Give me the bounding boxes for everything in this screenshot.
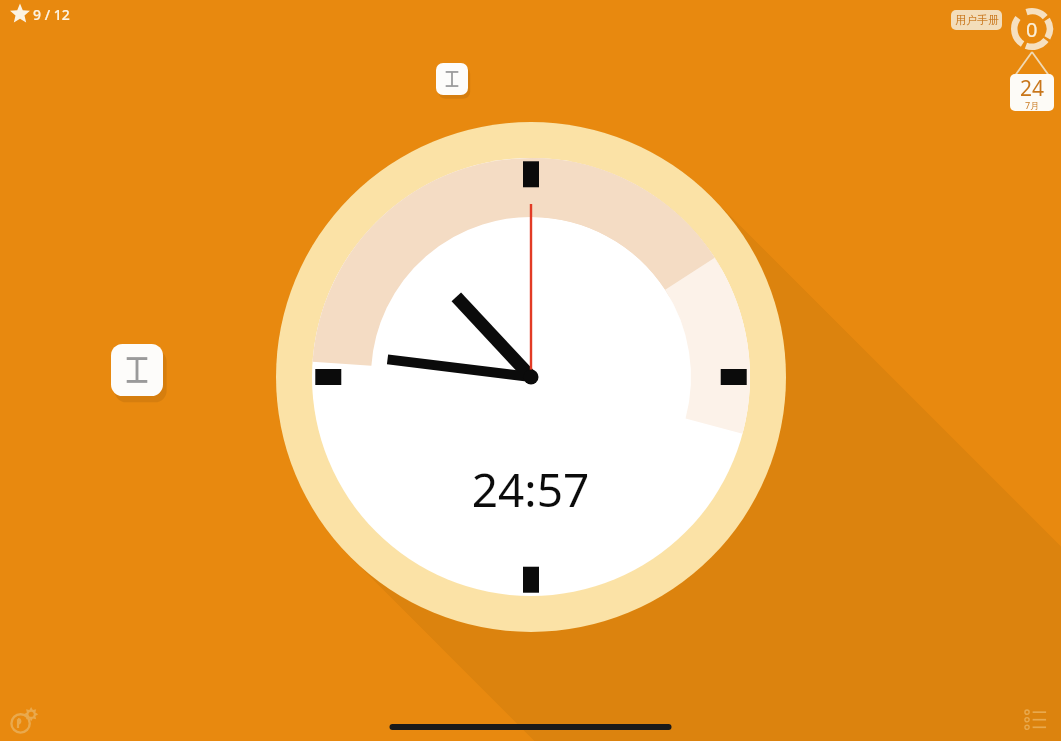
button[interactable]: 用户手册	[951, 10, 1002, 30]
staticText: 9 / 12	[33, 5, 70, 24]
button[interactable]: Progress	[1011, 8, 1053, 50]
staticText: 24	[1020, 74, 1045, 103]
button[interactable]: Text cursor	[436, 63, 468, 95]
staticText: 0	[1026, 16, 1038, 43]
staticText: 7月	[1025, 99, 1040, 111]
staticText: 24:57	[0, 458, 1061, 741]
button[interactable]: 24	[1010, 74, 1054, 111]
button[interactable]: Settings	[8, 703, 42, 737]
button[interactable]: Stars 9 of 12	[8, 4, 68, 28]
staticText: 用户手册	[955, 13, 999, 27]
button[interactable]: List	[1022, 706, 1050, 734]
button[interactable]: Text cursor	[111, 344, 163, 396]
